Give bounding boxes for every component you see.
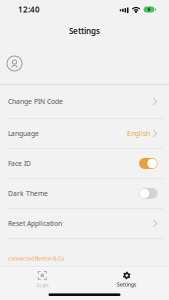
staticText: Settings (117, 281, 137, 288)
staticText: Reset Application (8, 219, 62, 228)
staticText: Face ID (8, 159, 31, 168)
staticText: connected Benton & Co (8, 255, 64, 262)
button[interactable]: Face ID (0, 149, 169, 179)
button[interactable]: Reset Application (0, 209, 169, 239)
button[interactable]: Change PIN Code (0, 85, 169, 119)
staticText: Language (8, 129, 39, 138)
staticText: Change PIN Code (8, 97, 63, 106)
button[interactable]: Profile (0, 52, 22, 75)
staticText: English (127, 129, 150, 138)
staticText: Scan (36, 282, 48, 289)
button[interactable]: Dark Theme (0, 179, 169, 209)
staticText: 12:40 (18, 4, 40, 15)
button[interactable]: Face ID (139, 158, 157, 169)
staticText: Dark Theme (8, 189, 48, 198)
button[interactable]: Scan (0, 266, 84, 293)
button[interactable]: Dark Theme (139, 188, 157, 199)
staticText: Settings (69, 26, 100, 36)
button[interactable]: Settings (84, 267, 169, 292)
button[interactable]: Language (0, 119, 169, 149)
